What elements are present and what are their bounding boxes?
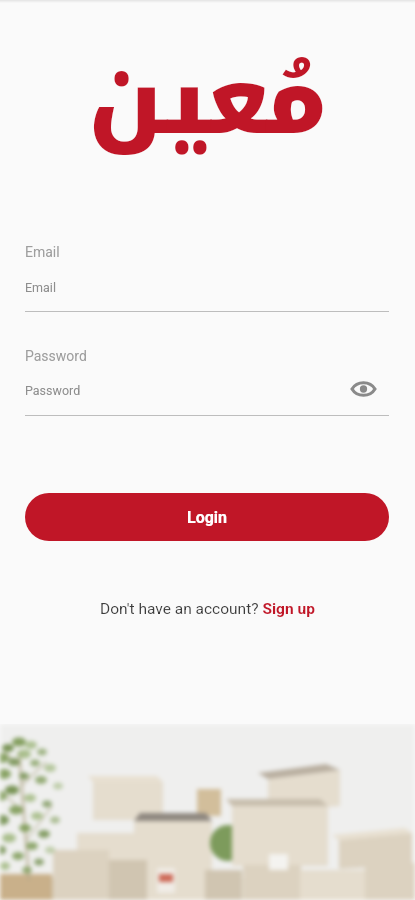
staticText: Password <box>25 383 81 398</box>
staticText: Login <box>187 508 228 527</box>
staticText: مُعين <box>0 16 415 189</box>
staticText: Email <box>25 280 56 295</box>
staticText: Email <box>25 244 60 260</box>
button[interactable]: Don't have an account? Sign up <box>100 600 315 618</box>
button[interactable]: Login <box>25 493 389 541</box>
staticText: Password <box>25 348 87 364</box>
button[interactable]: Show password <box>349 375 377 403</box>
